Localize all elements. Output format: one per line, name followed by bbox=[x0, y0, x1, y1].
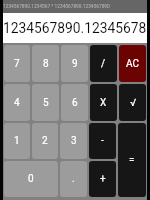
button[interactable]: 6 bbox=[61, 84, 88, 121]
button[interactable]: - bbox=[89, 123, 116, 159]
staticText: 7 bbox=[14, 58, 20, 70]
button[interactable]: AC bbox=[119, 45, 146, 82]
staticText: 4 bbox=[14, 97, 20, 109]
staticText: / bbox=[101, 58, 106, 70]
button[interactable]: 8 bbox=[32, 45, 59, 82]
staticText: 1 bbox=[14, 135, 20, 147]
staticText: 1234567890.12345678 bbox=[3, 20, 147, 36]
button[interactable]: + bbox=[89, 161, 116, 197]
button[interactable]: 7 bbox=[4, 45, 30, 82]
staticText: 5 bbox=[43, 97, 49, 109]
staticText: 1234567890.1234567 * 1234567890.12345678… bbox=[3, 4, 110, 10]
staticText: 6 bbox=[72, 97, 78, 109]
staticText: + bbox=[100, 173, 106, 185]
button[interactable]: 2 bbox=[32, 123, 58, 159]
staticText: . bbox=[72, 173, 75, 185]
button[interactable]: X bbox=[90, 84, 117, 121]
button[interactable]: 0 bbox=[4, 161, 58, 197]
button[interactable]: = bbox=[118, 123, 146, 197]
staticText: X bbox=[100, 97, 107, 109]
staticText: 0 bbox=[28, 173, 34, 185]
button[interactable]: 1 bbox=[4, 123, 30, 159]
staticText: = bbox=[129, 154, 135, 166]
staticText: 9 bbox=[72, 58, 78, 70]
button[interactable]: / bbox=[90, 45, 117, 82]
button[interactable]: 5 bbox=[32, 84, 59, 121]
staticText: - bbox=[101, 135, 104, 147]
button[interactable]: 4 bbox=[4, 84, 30, 121]
button[interactable]: . bbox=[60, 161, 87, 197]
staticText: 2 bbox=[42, 135, 48, 147]
staticText: 3 bbox=[71, 135, 77, 147]
button[interactable]: 9 bbox=[61, 45, 88, 82]
button[interactable]: √ bbox=[119, 84, 146, 121]
button[interactable]: 3 bbox=[60, 123, 87, 159]
staticText: AC bbox=[126, 58, 139, 70]
staticText: 8 bbox=[43, 58, 49, 70]
staticText: √ bbox=[130, 97, 136, 109]
